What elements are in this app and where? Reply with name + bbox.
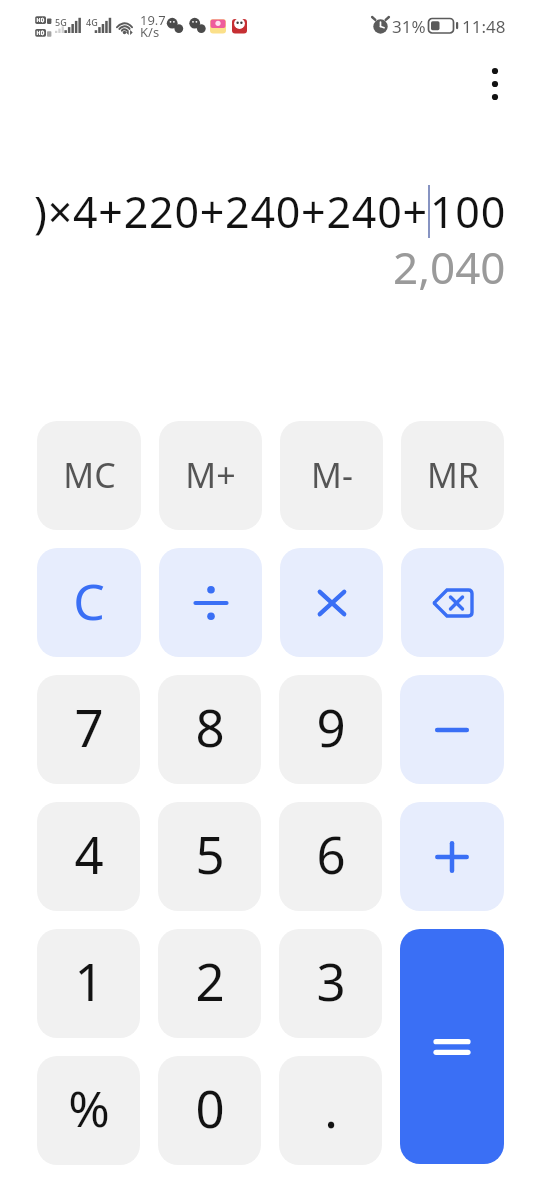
- staticText: 3: [316, 946, 346, 1015]
- staticText: 0: [195, 1073, 225, 1142]
- staticText: 7: [74, 692, 104, 761]
- staticText: .: [324, 1073, 338, 1142]
- staticText: C: [73, 567, 105, 635]
- staticText: MC: [63, 452, 116, 498]
- button[interactable]: 6: [279, 802, 382, 911]
- button[interactable]: 1: [37, 929, 140, 1038]
- button[interactable]: MR: [401, 421, 504, 530]
- staticText: 6: [316, 819, 346, 888]
- staticText: 1: [74, 946, 104, 1015]
- staticText: M-: [311, 452, 353, 498]
- button[interactable]: 8: [158, 675, 261, 784]
- staticText: 5: [195, 819, 225, 888]
- button[interactable]: %: [37, 1056, 140, 1165]
- button[interactable]: Multiply: [280, 548, 383, 657]
- button[interactable]: 7: [37, 675, 140, 784]
- staticText: 11:48: [462, 15, 506, 38]
- staticText: )×4+220+240+240+: [34, 182, 428, 241]
- staticText: 31%: [392, 15, 426, 38]
- button[interactable]: More options: [471, 60, 519, 108]
- button[interactable]: M-: [280, 421, 383, 530]
- button[interactable]: 5: [158, 802, 261, 911]
- staticText: MR: [427, 452, 479, 498]
- staticText: 19.7: [140, 11, 166, 29]
- staticText: 2: [195, 946, 225, 1015]
- button[interactable]: MC: [37, 421, 141, 530]
- staticText: 8: [195, 692, 225, 761]
- staticText: 100: [430, 182, 507, 241]
- button[interactable]: 0: [158, 1056, 261, 1165]
- staticText: 2,040: [393, 237, 506, 297]
- button[interactable]: 9: [279, 675, 382, 784]
- button[interactable]: Minus: [400, 675, 504, 784]
- staticText: 9: [316, 692, 346, 761]
- button[interactable]: C: [37, 548, 141, 657]
- staticText: 5G: [55, 16, 67, 28]
- button[interactable]: .: [279, 1056, 382, 1165]
- staticText: M+: [185, 452, 236, 498]
- staticText: K/s: [140, 23, 160, 41]
- button[interactable]: 2: [158, 929, 261, 1038]
- staticText: %: [68, 1074, 110, 1142]
- button[interactable]: Plus: [400, 802, 504, 911]
- button[interactable]: Backspace: [401, 548, 504, 657]
- button[interactable]: Divide: [159, 548, 262, 657]
- button[interactable]: 3: [279, 929, 382, 1038]
- button[interactable]: M+: [159, 421, 262, 530]
- staticText: 4: [74, 819, 104, 888]
- button[interactable]: 4: [37, 802, 140, 911]
- button[interactable]: Equals: [400, 929, 504, 1164]
- staticText: 4G: [86, 16, 98, 28]
